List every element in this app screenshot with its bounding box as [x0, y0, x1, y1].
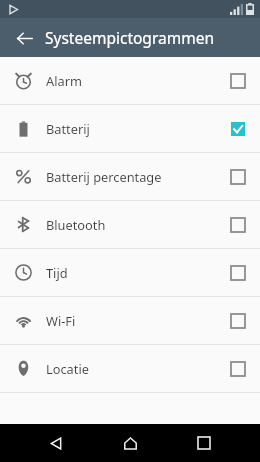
- button[interactable]: Locatie: [0, 345, 260, 392]
- staticText: Bluetooth: [46, 216, 106, 233]
- button[interactable]: Locatie checkbox: [216, 345, 260, 392]
- staticText: Locatie: [46, 360, 89, 377]
- staticText: Batterij: [46, 120, 90, 137]
- staticText: Systeempictogrammen: [45, 27, 214, 48]
- staticText: Batterij percentage: [46, 168, 162, 185]
- button[interactable]: Wi-Fi: [0, 297, 260, 344]
- button[interactable]: Bluetooth: [0, 201, 260, 248]
- staticText: Alarm: [46, 72, 82, 89]
- button[interactable]: Home: [93, 424, 167, 462]
- button[interactable]: Recents: [167, 424, 241, 462]
- staticText: Wi-Fi: [46, 312, 76, 329]
- button[interactable]: Alarm: [0, 57, 260, 104]
- button[interactable]: Alarm checkbox: [216, 57, 260, 104]
- button[interactable]: Tijd: [0, 249, 260, 296]
- button[interactable]: Batterij checkbox: [216, 105, 260, 152]
- button[interactable]: Back: [19, 424, 93, 462]
- button[interactable]: Tijd checkbox: [216, 249, 260, 296]
- button[interactable]: Batterij percentage: [0, 153, 260, 200]
- button[interactable]: Back: [9, 23, 39, 53]
- staticText: Tijd: [46, 264, 68, 281]
- button[interactable]: Batterij percentage checkbox: [216, 153, 260, 200]
- button[interactable]: Bluetooth checkbox: [216, 201, 260, 248]
- button[interactable]: Wi-Fi checkbox: [216, 297, 260, 344]
- button[interactable]: Batterij: [0, 105, 260, 152]
